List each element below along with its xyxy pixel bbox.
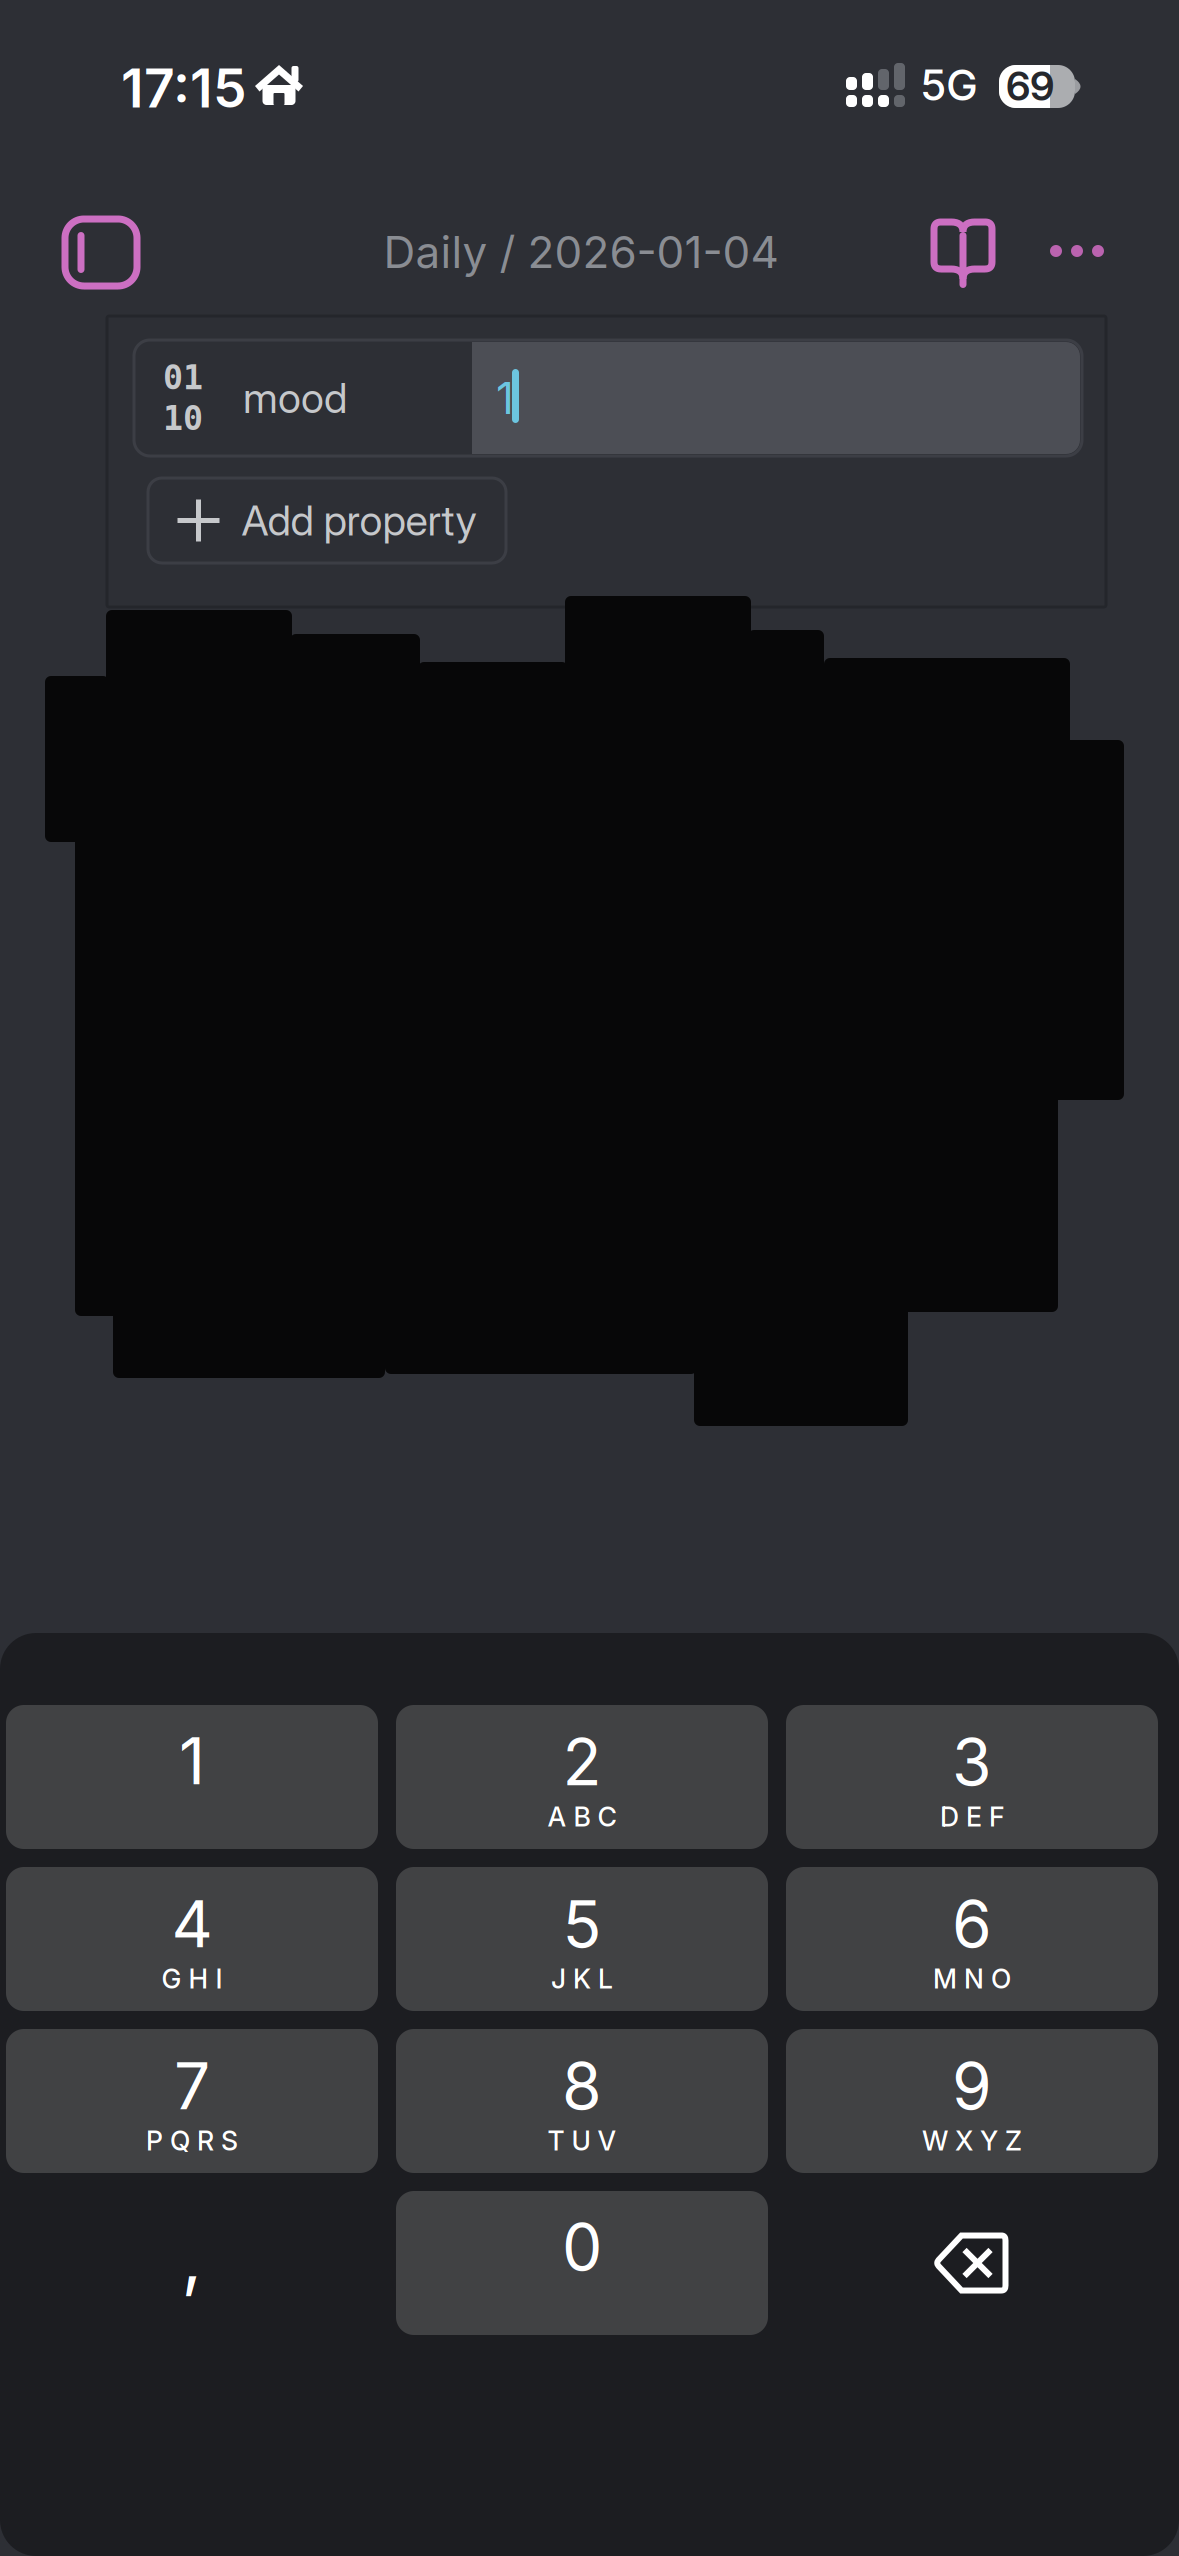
staticText: Add property	[241, 495, 476, 545]
button[interactable]: Comma	[6, 2191, 378, 2335]
staticText: 10	[163, 399, 203, 438]
staticText: 9	[952, 2047, 992, 2124]
staticText: 01	[163, 358, 203, 397]
staticText: J K L	[551, 1963, 613, 1995]
button[interactable]: Toggle sidebar	[62, 216, 140, 289]
button[interactable]: More options	[1050, 231, 1104, 271]
staticText: Daily / 2026-01-04	[383, 225, 778, 279]
staticText: M N O	[933, 1963, 1011, 1995]
button[interactable]: 4	[6, 1867, 378, 2011]
staticText: G H I	[161, 1963, 222, 1995]
staticText: 5G	[920, 59, 978, 111]
staticText: 1	[496, 371, 514, 425]
button[interactable]: 1	[6, 1705, 378, 1849]
button[interactable]: 2	[396, 1705, 768, 1849]
staticText: ,	[181, 2213, 202, 2300]
staticText: mood	[243, 373, 347, 423]
staticText: W X Y Z	[922, 2125, 1022, 2157]
staticText: 6	[952, 1885, 992, 1962]
staticText: 4	[171, 1885, 212, 1962]
button[interactable]: Add property	[148, 478, 506, 563]
staticText: T U V	[547, 2125, 616, 2157]
staticText: 69	[1006, 62, 1054, 110]
button[interactable]: 9	[786, 2029, 1158, 2173]
staticText: 1	[179, 1722, 205, 1800]
staticText: 3	[952, 1723, 992, 1800]
button[interactable]: 0	[396, 2191, 768, 2335]
staticText: 7	[174, 2047, 210, 2124]
button[interactable]: Reading mode	[930, 218, 996, 291]
staticText: P Q R S	[146, 2125, 238, 2157]
button[interactable]: 7	[6, 2029, 378, 2173]
button[interactable]: 5	[396, 1867, 768, 2011]
staticText: D E F	[940, 1801, 1004, 1833]
staticText: 0	[562, 2208, 602, 2286]
staticText: 8	[562, 2047, 602, 2124]
staticText: A B C	[547, 1801, 616, 1833]
button[interactable]: 8	[396, 2029, 768, 2173]
staticText: 2	[562, 1723, 601, 1800]
button[interactable]: Delete	[786, 2191, 1158, 2335]
staticText: 17:15	[121, 56, 247, 120]
button[interactable]: 6	[786, 1867, 1158, 2011]
button[interactable]: 3	[786, 1705, 1158, 1849]
staticText: 5	[562, 1885, 601, 1962]
